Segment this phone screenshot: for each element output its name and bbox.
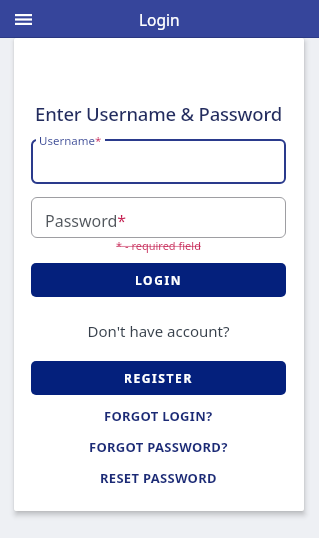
button[interactable] — [31, 139, 286, 184]
staticText: * - required field — [31, 238, 286, 253]
button[interactable]: RESET PASSWORD — [100, 469, 217, 487]
staticText: Don't have account? — [31, 321, 286, 341]
staticText: RESET PASSWORD — [100, 469, 217, 487]
button[interactable]: FORGOT PASSWORD? — [89, 438, 228, 456]
button[interactable] — [15, 14, 32, 25]
staticText: Login — [139, 9, 180, 30]
button[interactable]: Password* — [31, 197, 286, 238]
button[interactable]: REGISTER — [31, 361, 286, 395]
staticText: FORGOT PASSWORD? — [89, 438, 228, 456]
button[interactable]: LOGIN — [31, 263, 286, 297]
staticText: Username* — [39, 133, 102, 149]
staticText: REGISTER — [124, 370, 193, 386]
button[interactable]: FORGOT LOGIN? — [104, 407, 213, 425]
staticText: Enter Username & Password — [31, 101, 286, 126]
staticText: LOGIN — [135, 272, 183, 288]
staticText: FORGOT LOGIN? — [104, 407, 213, 425]
staticText: Password* — [45, 210, 127, 232]
